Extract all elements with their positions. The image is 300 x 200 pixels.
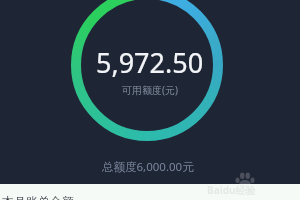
button[interactable]: 本月账单金额: [0, 184, 300, 200]
staticText: 可用额度(元): [122, 83, 178, 97]
staticText: Baidu经验: [207, 183, 256, 197]
staticText: 本月账单金额: [2, 194, 74, 200]
staticText: 总额度6,000.00元: [102, 159, 194, 175]
staticText: 5,972.50: [96, 44, 204, 81]
